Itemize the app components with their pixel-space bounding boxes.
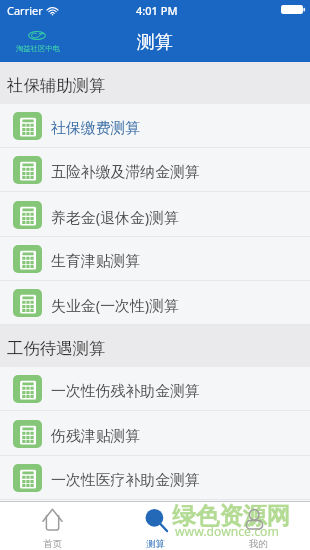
staticText: www.downce.com [175,523,279,540]
staticText: 生育津贴测算 [51,252,141,271]
staticText: 我的 [249,538,268,550]
button[interactable]: 生育津贴测算 [0,237,310,281]
staticText: 测算 [146,538,165,550]
staticText: 五险补缴及滞纳金测算 [51,163,200,182]
staticText: 首页 [43,538,62,550]
staticText: 一次性伤残补助金测算 [51,382,200,401]
staticText: 社保缴费测算 [51,119,141,138]
button[interactable]: 失业金(一次性)测算 [0,281,310,325]
staticText: 伤残津贴测算 [51,427,141,446]
button[interactable]: 一次性医疗补助金测算 [0,456,310,500]
staticText: 绿色资源网 [172,501,290,531]
other: 首页 [42,508,63,531]
button[interactable]: 伤残津贴测算 [0,412,310,456]
button[interactable]: 测算 [104,502,207,550]
staticText: Carrier [7,3,43,18]
button[interactable]: 首页 [0,502,104,550]
button[interactable]: 养老金(退休金)测算 [0,193,310,237]
staticText: 养老金(退休金)测算 [51,207,180,227]
staticText: 社保辅助测算 [7,75,106,96]
staticText: 测算 [137,31,173,54]
button[interactable]: 我的 [207,502,310,550]
staticText: 4:01 PM [136,3,178,18]
other: 测算 [145,509,168,531]
other: 我的 [246,508,263,530]
button[interactable]: 社保缴费测算 [0,104,310,148]
staticText: 一次性医疗补助金测算 [51,471,200,490]
button[interactable]: 五险补缴及滞纳金测算 [0,148,310,192]
staticText: 工伤待遇测算 [7,338,106,359]
staticText: 失业金(一次性)测算 [51,295,180,315]
staticText: 淘益社区中电 [16,44,60,53]
button[interactable]: 一次性伤残补助金测算 [0,367,310,411]
